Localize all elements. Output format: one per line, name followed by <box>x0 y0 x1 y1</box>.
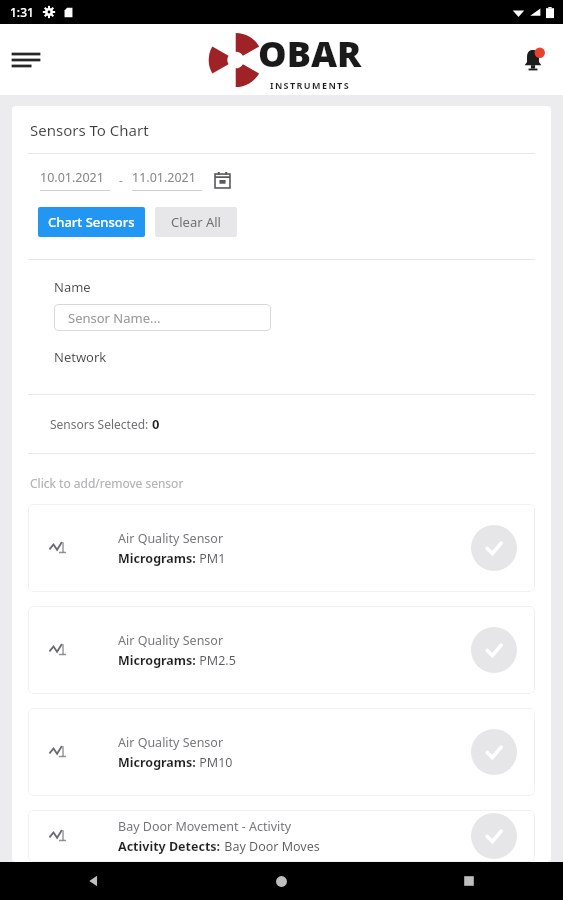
staticText: Chart Sensors <box>48 213 135 231</box>
staticText: PM2.5 <box>196 652 236 669</box>
button[interactable]: Recent apps <box>375 862 563 900</box>
staticText: PM1 <box>196 550 226 567</box>
staticText: Sensors To Chart <box>30 120 149 140</box>
button[interactable]: Air Quality Sensor <box>28 504 535 592</box>
staticText: Sensor Name... <box>68 309 161 327</box>
staticText: Air Quality Sensor <box>118 734 224 751</box>
button[interactable]: Air Quality Sensor <box>28 708 535 796</box>
staticText: Micrograms: <box>118 550 196 567</box>
button[interactable]: Air Quality Sensor <box>28 606 535 694</box>
staticText: Air Quality Sensor <box>118 530 224 547</box>
button[interactable]: Open navigation menu <box>4 38 48 82</box>
staticText: Network <box>54 348 107 366</box>
staticText: 0 <box>152 415 160 433</box>
staticText: Bay Door Movement - Activity <box>118 818 292 835</box>
staticText: Name <box>54 278 91 296</box>
staticText: Micrograms: <box>118 754 196 771</box>
staticText: Click to add/remove sensor <box>30 475 184 491</box>
button[interactable]: Home <box>187 862 375 900</box>
button[interactable]: Notifications <box>511 38 555 82</box>
staticText: Air Quality Sensor <box>118 632 224 649</box>
staticText: 11.01.2021 <box>132 169 196 186</box>
staticText: Bay Door Moves <box>221 838 320 855</box>
staticText: 1:31 <box>10 4 34 20</box>
button[interactable]: Clear All <box>155 207 237 237</box>
button[interactable]: Back <box>0 862 187 900</box>
button[interactable]: Pick date range <box>211 169 233 191</box>
staticText: Activity Detects: <box>118 838 221 855</box>
staticText: 10.01.2021 <box>40 169 104 186</box>
button[interactable]: Sensor Name... <box>54 304 271 331</box>
staticText: Sensors Selected: <box>50 416 152 432</box>
staticText: INSTRUMENTS <box>270 79 351 91</box>
button[interactable]: Bay Door Movement - Activity <box>28 810 535 862</box>
staticText: - <box>119 172 123 188</box>
staticText: PM10 <box>196 754 233 771</box>
staticText: Clear All <box>171 213 221 231</box>
staticText: OBAR <box>258 29 362 78</box>
button[interactable]: Chart Sensors <box>38 207 145 237</box>
staticText: Micrograms: <box>118 652 196 669</box>
